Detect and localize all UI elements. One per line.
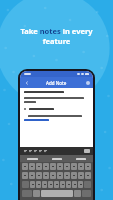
button[interactable] <box>71 172 77 179</box>
staticText: Add Note <box>46 80 67 86</box>
button[interactable] <box>22 163 28 170</box>
button[interactable] <box>20 158 45 160</box>
button[interactable] <box>43 172 49 179</box>
button[interactable] <box>36 181 41 188</box>
button[interactable] <box>36 163 42 170</box>
button[interactable] <box>29 172 35 179</box>
button[interactable] <box>72 181 77 188</box>
button[interactable] <box>29 163 35 170</box>
button[interactable] <box>54 181 59 188</box>
button[interactable] <box>64 163 70 170</box>
button[interactable] <box>48 181 53 188</box>
button[interactable]: Format tool 2 <box>28 149 33 154</box>
button[interactable] <box>42 181 47 188</box>
button[interactable] <box>69 158 93 160</box>
button[interactable]: Emoji <box>33 190 40 197</box>
button[interactable] <box>24 108 89 110</box>
button[interactable] <box>36 172 42 179</box>
button[interactable] <box>78 172 84 179</box>
button[interactable] <box>85 172 91 179</box>
button[interactable]: Format tool 3 <box>33 149 38 154</box>
button[interactable] <box>30 181 35 188</box>
button[interactable]: Format tool 5 <box>43 149 48 154</box>
button[interactable] <box>66 181 71 188</box>
button[interactable]: Space <box>41 190 73 197</box>
button[interactable] <box>71 163 77 170</box>
button[interactable] <box>50 163 56 170</box>
button[interactable] <box>85 163 91 170</box>
button[interactable] <box>43 163 49 170</box>
button[interactable]: Period <box>74 190 81 197</box>
button[interactable]: Keyboard settings <box>84 149 90 153</box>
button[interactable] <box>22 172 28 179</box>
button[interactable] <box>64 172 70 179</box>
button[interactable] <box>57 172 63 179</box>
button[interactable] <box>78 163 84 170</box>
staticText: Take notes in every feature <box>6 26 107 46</box>
button[interactable] <box>45 158 69 160</box>
button[interactable] <box>60 181 65 188</box>
button[interactable]: Back <box>22 78 31 87</box>
button[interactable] <box>50 172 56 179</box>
button[interactable]: More options <box>86 81 90 85</box>
button[interactable] <box>57 163 63 170</box>
button[interactable] <box>78 181 83 188</box>
button[interactable]: Format tool 1 <box>23 149 28 154</box>
button[interactable]: Format tool 4 <box>38 149 43 154</box>
